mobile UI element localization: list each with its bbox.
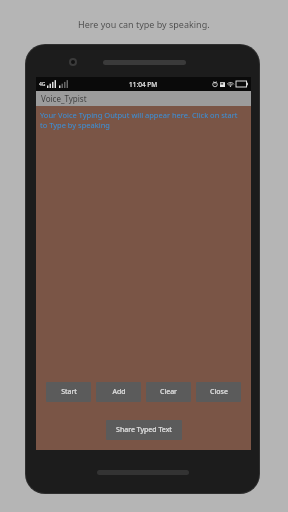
button[interactable]: Close <box>196 382 241 402</box>
staticText: Here you can type by speaking. <box>78 18 210 30</box>
staticText: Start <box>61 387 77 397</box>
staticText: Share Typed Text <box>116 425 172 435</box>
button[interactable]: Voice_Typist <box>36 91 251 106</box>
button[interactable]: Add <box>96 382 141 402</box>
staticText: Close <box>210 387 228 397</box>
button[interactable]: Start <box>46 382 91 402</box>
staticText: Clear <box>160 387 177 397</box>
staticText: Add <box>112 387 126 397</box>
staticText: Voice_Typist <box>41 93 87 104</box>
staticText: Your Voice Typing Output will appear her… <box>40 110 241 130</box>
staticText: 11:04 PM <box>129 80 158 89</box>
button[interactable]: Clear <box>146 382 191 402</box>
button[interactable]: Share Typed Text <box>106 420 182 440</box>
staticText: 4G <box>39 81 46 88</box>
